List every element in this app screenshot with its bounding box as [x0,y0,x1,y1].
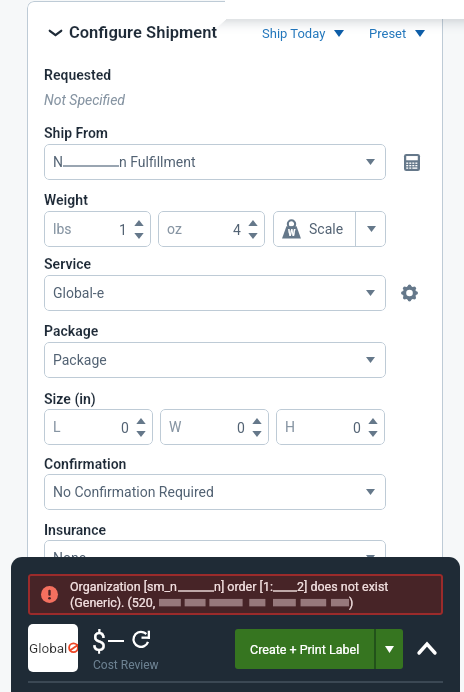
button[interactable]: W [160,409,269,445]
staticText: 4 [233,222,241,238]
staticText: Package [53,352,107,368]
staticText: 2] does not exist [297,579,389,594]
staticText: Service [44,256,92,272]
button[interactable]: W [273,211,355,247]
staticText: Confirmation [44,456,127,472]
staticText: 1 [119,222,127,238]
staticText: Cost Review [93,658,159,672]
staticText: H [285,419,295,435]
button[interactable]: Global-e [44,275,386,311]
button[interactable]: More label options [376,629,403,669]
staticText: $ [92,628,107,657]
button[interactable]: H [276,409,385,445]
staticText: 0 [121,420,129,436]
button[interactable]: No Confirmation Required [44,474,386,510]
staticText: Organization [sm_n [70,579,178,594]
staticText: Create + Print Label [250,642,360,657]
button[interactable]: Expand panel [411,632,443,664]
staticText: (Generic). (520, [70,595,159,610]
staticText: W [169,419,182,435]
staticText: oz [167,221,182,237]
staticText: W [288,228,296,238]
button[interactable]: Service settings [394,278,424,308]
staticText: N [53,154,63,170]
button[interactable]: Create + Print Label [235,629,374,669]
button[interactable]: lbs [44,211,151,247]
staticText: 0 [237,420,245,436]
staticText: 0 [353,420,361,436]
button[interactable]: oz [158,211,265,247]
staticText: Package [44,323,99,339]
button[interactable]: Scale options [356,211,386,247]
staticText: Ship Today [262,26,326,41]
button[interactable]: Calculate rates [397,147,427,177]
staticText: No Confirmation Required [53,484,214,500]
staticText: lbs [53,221,72,237]
button[interactable]: Refresh cost [130,628,152,650]
staticText: Configure Shipment [69,23,218,42]
staticText: Size (in) [44,391,96,407]
staticText: Ship From [44,125,108,141]
button[interactable]: None [44,540,386,576]
staticText: None [53,550,87,566]
button[interactable]: Collapse Configure Shipment [47,20,220,45]
staticText: Not Specified [44,92,125,108]
button[interactable]: N [44,144,386,180]
button[interactable]: Global-e carrier [28,624,78,672]
button[interactable]: Preset [367,22,427,45]
staticText: n] order [1: [214,579,273,594]
staticText: L [53,419,61,435]
staticText: Weight [44,192,88,208]
button[interactable]: Package [44,342,386,378]
button[interactable]: Ship Today [260,22,346,45]
staticText: Scale [309,221,344,237]
staticText: Preset [369,26,407,41]
staticText: Requested [44,67,112,83]
staticText: n Fulfillment [119,154,196,170]
button[interactable]: L [44,409,153,445]
staticText: Insurance [44,522,107,538]
staticText: Global [29,640,68,656]
staticText: Global-e [53,285,105,301]
staticText: ) [349,595,354,610]
